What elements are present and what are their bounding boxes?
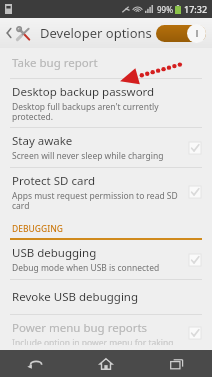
staticText: 17:32 [184,3,208,15]
staticText: 99% [157,4,173,15]
staticText: Revoke USB debugging authorisations [12,289,208,305]
button[interactable]: Revoke USB debugging authorisations [0,280,212,314]
button[interactable]: Power menu bug reports [0,315,212,350]
staticText: Take bug report [12,55,98,71]
button[interactable]: Stay awake [0,128,212,167]
button[interactable]: Protect SD card [0,168,212,216]
button[interactable]: Back [3,18,35,48]
staticText: USB debugging [12,245,97,261]
button[interactable]: Recent apps [141,350,212,377]
button[interactable]: Desktop backup password [0,79,212,127]
button[interactable]: Home [70,350,141,377]
button[interactable]: Developer options enabled [156,22,206,44]
staticText: Protect SD card [12,173,95,189]
staticText: Desktop backup password [12,84,155,100]
staticText: Developer options [40,24,152,42]
button[interactable]: Back [0,350,70,377]
button[interactable]: USB debugging [0,240,212,279]
staticText: Stay awake [12,133,73,149]
staticText: Desktop full backups aren't currently pr… [12,101,196,122]
staticText: Power menu bug reports [12,320,148,336]
button[interactable]: Take bug report [0,48,212,78]
staticText: DEBUGGING [12,223,63,235]
staticText: Screen will never sleep while charging [12,150,164,162]
staticText: Debug mode when USB is connected [12,262,160,274]
staticText: Apps must request permission to read SD … [12,190,180,211]
staticText: Include option in power menu for taking … [12,337,180,345]
